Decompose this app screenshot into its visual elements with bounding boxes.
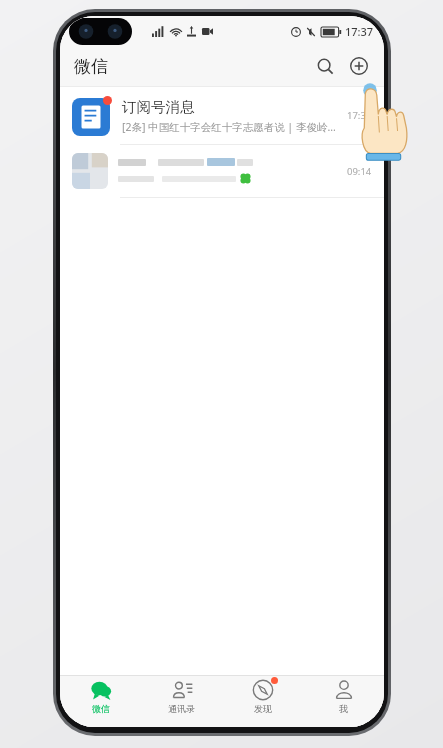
button[interactable]: 我 [303, 679, 384, 727]
button[interactable]: 09:14 [60, 145, 384, 197]
staticText: 17:37 [345, 24, 374, 39]
staticText: 发现 [254, 703, 272, 714]
staticText: 09:14 [347, 165, 372, 178]
staticText: 微信 [74, 56, 108, 77]
staticText: 订阅号消息 [122, 98, 195, 116]
staticText: 17:36 [347, 109, 372, 122]
staticText: 我 [339, 703, 348, 714]
staticText: 微信 [92, 703, 110, 714]
button[interactable]: 微信 [60, 679, 141, 727]
button[interactable]: Add [342, 49, 376, 83]
button[interactable]: Search [308, 49, 342, 83]
button[interactable]: 发现 [222, 679, 303, 727]
staticText: [2条] 中国红十字会红十字志愿者说 | 李俊岭… [122, 120, 336, 134]
button[interactable]: 通讯录 [141, 679, 222, 727]
staticText: 通讯录 [168, 703, 195, 714]
button[interactable]: 订阅号消息 [60, 87, 384, 144]
